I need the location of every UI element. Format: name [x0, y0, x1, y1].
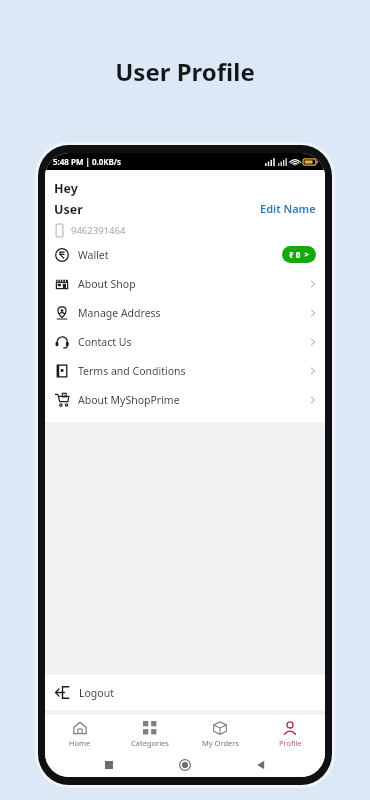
button[interactable]: About MyShopPrime [45, 385, 325, 414]
staticText: Edit Name [260, 201, 316, 216]
staticText: Manage Address [78, 306, 310, 320]
staticText: Categories [131, 738, 169, 748]
button[interactable]: Home [45, 715, 115, 753]
button[interactable]: Logout [45, 675, 325, 710]
staticText: Wallet [78, 248, 282, 262]
button[interactable]: Manage Address [45, 298, 325, 327]
button[interactable]: Categories [115, 715, 185, 753]
button[interactable]: My Orders [185, 715, 255, 753]
button[interactable]: Profile [255, 715, 325, 753]
staticText: Logout [79, 686, 114, 700]
staticText: About MyShopPrime [78, 393, 310, 407]
staticText: My Orders [202, 738, 239, 748]
button[interactable]: Contact Us [45, 327, 325, 356]
button[interactable]: About Shop [45, 269, 325, 298]
button[interactable]: Terms and Conditions [45, 356, 325, 385]
button[interactable]: Home [173, 753, 197, 777]
staticText: Home [69, 738, 91, 748]
staticText: 5:48 PM | 0.0KB/s [53, 156, 121, 167]
staticText: Profile [279, 738, 302, 748]
staticText: Hey [54, 180, 78, 197]
staticText: Contact Us [78, 335, 310, 349]
staticText: ₹ 0 [289, 249, 301, 260]
button[interactable]: Wallet [45, 240, 325, 269]
staticText: Terms and Conditions [78, 364, 310, 378]
button[interactable]: Back [249, 753, 273, 777]
button[interactable]: Recents [97, 753, 121, 777]
staticText: 9462391464 [71, 224, 126, 237]
staticText: About Shop [78, 277, 310, 291]
staticText: User Profile [0, 55, 370, 88]
staticText: User [54, 201, 83, 218]
button[interactable]: Edit Name [258, 199, 318, 218]
